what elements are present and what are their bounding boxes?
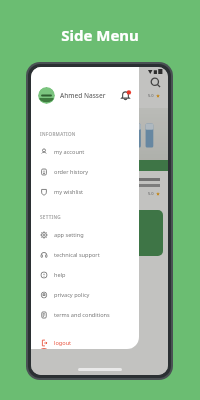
other: Search — [150, 77, 161, 88]
button[interactable]: my account — [31, 142, 139, 162]
button[interactable]: Notifications — [119, 89, 132, 102]
staticText: technical support — [54, 251, 100, 259]
staticText: logout — [54, 339, 72, 347]
staticText: my wishlist — [54, 188, 84, 196]
staticText: SETTING — [40, 214, 61, 220]
staticText: order history — [54, 168, 89, 176]
staticText: Side Menu — [61, 25, 139, 45]
staticText: privacy policy — [54, 291, 90, 299]
staticText: app setting — [54, 231, 84, 239]
staticText: terms and conditions — [54, 311, 110, 319]
staticText: 5.0 — [148, 191, 154, 196]
button[interactable]: terms and conditions — [31, 305, 139, 325]
button[interactable]: order history — [31, 162, 139, 182]
button[interactable]: privacy policy — [31, 285, 139, 305]
button[interactable]: my wishlist — [31, 182, 139, 202]
button[interactable]: Ahmed Nasser — [31, 85, 139, 106]
button[interactable]: logout — [31, 336, 139, 349]
staticText: INFORMATION — [40, 131, 76, 137]
staticText: Ahmed Nasser — [60, 91, 106, 100]
button[interactable]: technical support — [31, 245, 139, 265]
button[interactable]: app setting — [31, 225, 139, 245]
staticText: my account — [54, 148, 85, 156]
staticText: help — [54, 271, 66, 279]
staticText: 5.0 — [148, 93, 154, 98]
button[interactable]: help — [31, 265, 139, 285]
